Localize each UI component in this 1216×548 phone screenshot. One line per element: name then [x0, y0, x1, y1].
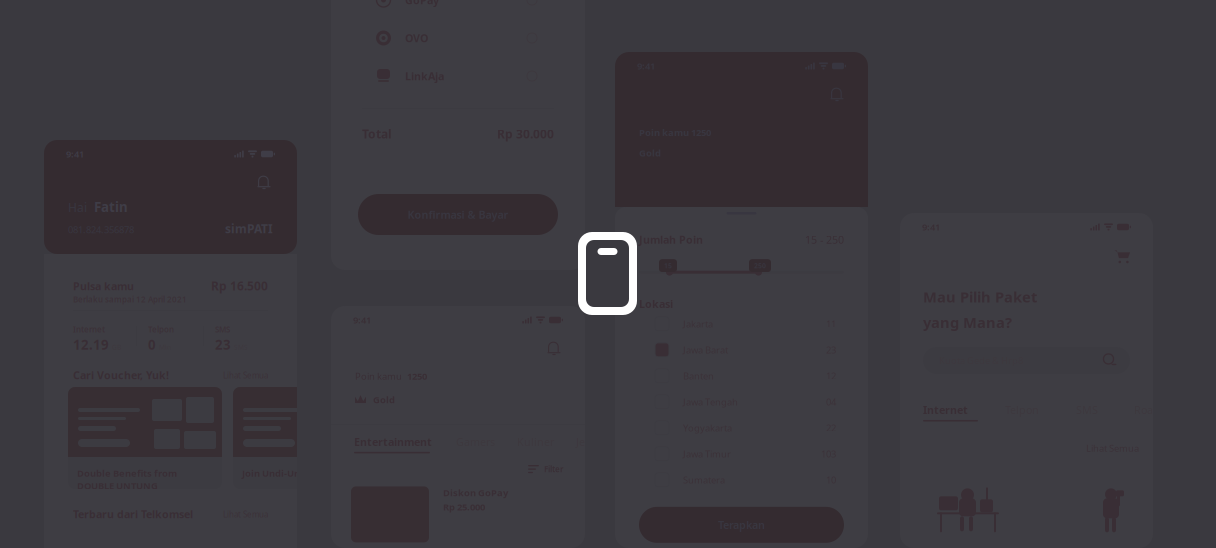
staticText: Terapkan: [718, 518, 765, 532]
staticText: Poin kamu 1250: [639, 126, 711, 139]
staticText: Berlaku sampai 12 April 2021: [73, 294, 187, 305]
button[interactable]: Jakarta: [615, 311, 868, 337]
staticText: Cari Voucher, Yuk!: [73, 368, 169, 382]
staticText: SMS: [215, 324, 230, 335]
staticText: Gold: [373, 393, 395, 406]
staticText: 1250: [407, 370, 427, 382]
staticText: 23: [215, 336, 231, 353]
button[interactable]: Notifications: [547, 340, 561, 356]
staticText: OVO: [405, 31, 428, 45]
staticText: 0: [148, 336, 156, 353]
staticText: 9:41: [922, 221, 940, 233]
staticText: Terbaru dari Telkomsel: [73, 507, 193, 521]
button[interactable]: Double Benefits from DOUBLE UNTUNG: [68, 387, 222, 489]
staticText: Rp 30.000: [497, 126, 554, 142]
staticText: Fatin: [94, 198, 128, 216]
staticText: Internet: [73, 324, 105, 335]
staticText: GoPay: [405, 0, 439, 7]
staticText: 9:41: [637, 60, 655, 72]
staticText: Hai: [68, 199, 87, 215]
staticText: Pulsa kamu: [73, 279, 134, 293]
staticText: Rp 25.000: [443, 501, 485, 513]
staticText: Rp 16.500: [211, 278, 268, 294]
staticText: Gold: [639, 147, 661, 159]
button[interactable]: Filter: [528, 464, 563, 474]
staticText: 15 - 250: [805, 232, 844, 247]
staticText: Entertainment: [354, 435, 432, 449]
button[interactable]: Internet: [923, 404, 1004, 424]
staticText: 250: [754, 261, 766, 270]
staticText: 04: [826, 396, 836, 408]
staticText: Lokasi: [639, 297, 673, 311]
staticText: Total: [362, 126, 392, 142]
staticText: Poin kamu: [355, 370, 402, 382]
button[interactable]: Notifications: [257, 174, 271, 190]
staticText: LinkAja: [405, 69, 444, 83]
button[interactable]: Lihat Semua: [73, 370, 268, 381]
staticText: 15: [664, 261, 672, 270]
staticText: Konfirmasi & Bayar: [407, 207, 508, 222]
staticText: Jumlah Poin: [639, 232, 703, 247]
staticText: Diskon GoPay: [443, 486, 508, 499]
staticText: Double Benefits from DOUBLE UNTUNG: [77, 467, 177, 492]
button[interactable]: Konfirmasi & Bayar: [358, 194, 558, 235]
staticText: simPATI: [225, 221, 273, 237]
staticText: 12.19: [73, 336, 109, 353]
staticText: 9:41: [66, 148, 84, 160]
button[interactable]: Terapkan: [639, 507, 844, 543]
button[interactable]: Cart: [1114, 249, 1131, 264]
staticText: 9:41: [353, 314, 371, 326]
staticText: Filter: [544, 464, 563, 474]
staticText: 081.824.356878: [68, 223, 134, 236]
staticText: Telpon: [148, 324, 174, 335]
staticText: Join Undi-Und: [242, 467, 306, 479]
staticText: Internet: [923, 403, 968, 417]
staticText: yang Mana?: [923, 312, 1012, 332]
button[interactable]: Join Undi-Und: [233, 387, 387, 489]
button[interactable]: Entertainment: [354, 436, 456, 456]
staticText: Mau Pilih Paket: [923, 287, 1037, 306]
